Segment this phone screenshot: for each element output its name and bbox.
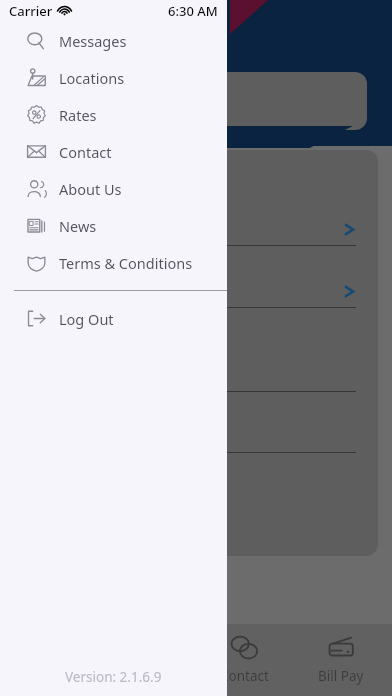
button[interactable]: Contact <box>199 635 289 685</box>
staticText: Log Out <box>59 309 114 329</box>
other: Contact <box>231 635 258 662</box>
button[interactable]: Contact <box>0 133 227 170</box>
other: Open details <box>343 223 356 236</box>
button[interactable]: Contact <box>6 635 96 685</box>
button[interactable]: Open details <box>8 274 378 308</box>
staticText: Locations <box>59 68 125 88</box>
staticText: Bill Pay <box>318 667 364 685</box>
staticText: Accounts <box>119 667 177 685</box>
staticText: Rates <box>59 105 97 125</box>
staticText: Contact <box>220 667 269 685</box>
staticText: Carrier <box>9 2 53 20</box>
staticText: News <box>59 216 97 236</box>
button[interactable]: Rates <box>0 96 227 133</box>
button[interactable]: About Us <box>0 170 227 207</box>
button[interactable]: Messages <box>0 22 227 59</box>
staticText: Messages <box>59 31 127 51</box>
button[interactable]: News <box>0 207 227 244</box>
staticText: Home <box>32 667 71 685</box>
button[interactable]: Scheduled <box>0 72 367 130</box>
staticText: About Us <box>59 179 122 199</box>
button[interactable]: Open details <box>8 212 378 246</box>
other: Open details <box>343 285 356 298</box>
other: Bill Pay <box>328 635 355 662</box>
button[interactable]: Log Out <box>0 300 227 337</box>
button[interactable]: Contact <box>103 635 193 685</box>
staticText: Terms & Conditions <box>59 253 193 273</box>
button[interactable]: Terms & Conditions <box>0 244 227 281</box>
staticText: Contact <box>59 142 112 162</box>
button[interactable]: Bill Pay <box>296 635 386 685</box>
button[interactable]: Locations <box>0 59 227 96</box>
staticText: 6:30 AM <box>168 2 218 20</box>
staticText: Version: 2.1.6.9 <box>65 668 162 686</box>
